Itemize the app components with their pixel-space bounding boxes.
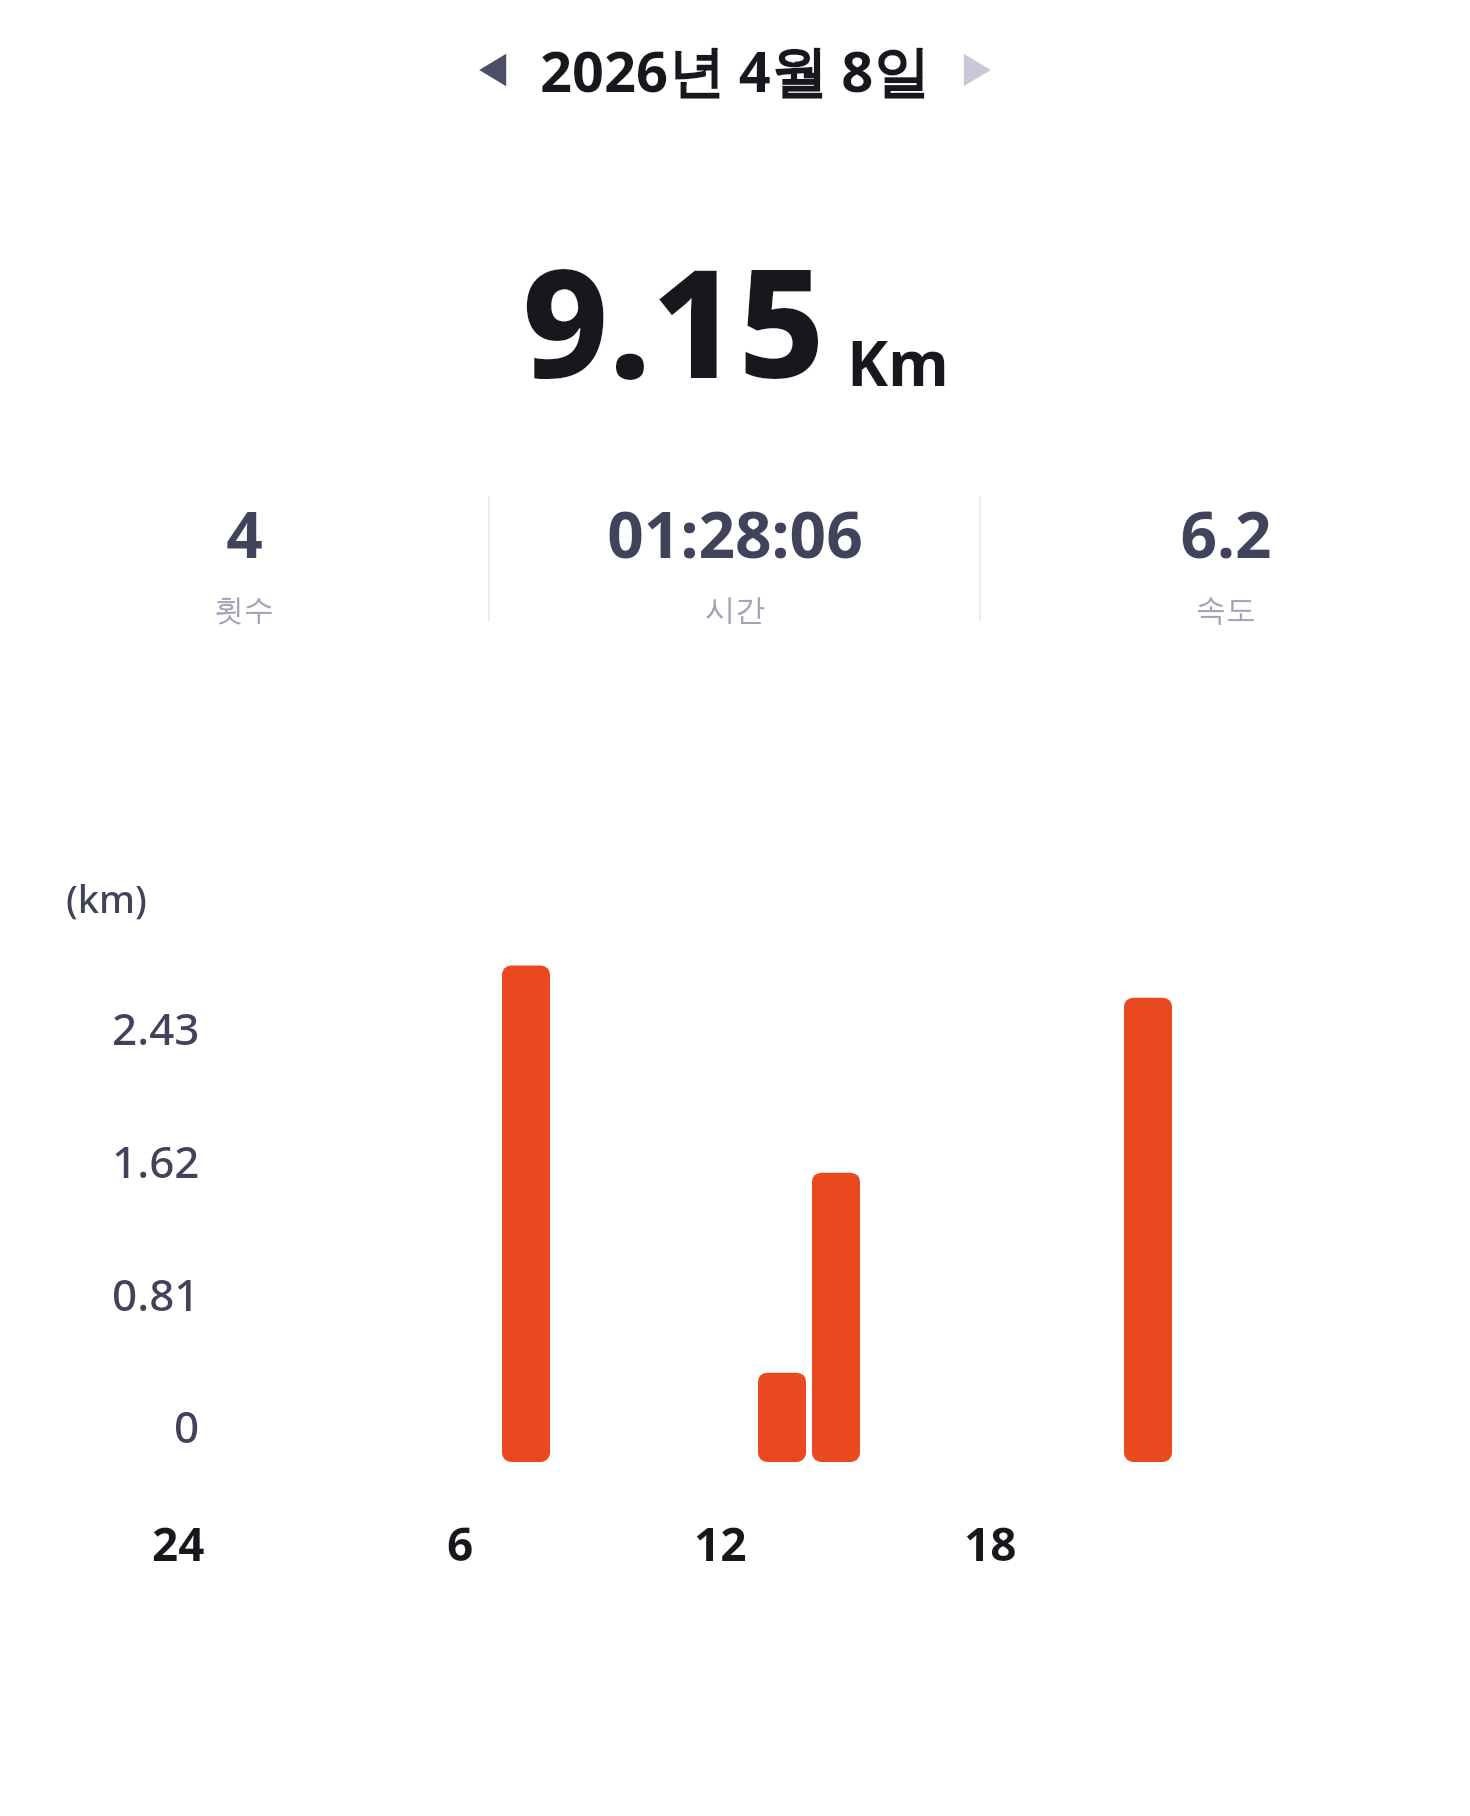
staticText: 6.2 [1180,490,1272,577]
staticText: Km [847,320,949,404]
button[interactable]: Next day [948,41,1006,99]
button[interactable]: 6.2 [981,490,1470,655]
staticText: 01:28:06 [607,490,863,577]
staticText: 18 [964,1512,1017,1575]
staticText: 6 [447,1512,474,1575]
staticText: 2026년 4월 8일 [540,32,930,108]
button[interactable]: 4 [0,490,488,655]
staticText: 속도 [1196,591,1256,629]
staticText: 횟수 [214,591,274,629]
staticText: 0.81 [112,1264,200,1324]
staticText: 2.43 [112,998,200,1058]
staticText: (km) [66,872,147,924]
staticText: 0 [174,1396,200,1456]
button[interactable]: Previous day [464,41,522,99]
staticText: 4 [226,490,263,577]
staticText: 24 [152,1512,205,1575]
button[interactable]: 01:28:06 [490,490,979,655]
staticText: 12 [694,1512,747,1575]
staticText: 9.15 [522,218,825,422]
staticText: 시간 [705,591,765,629]
staticText: 1.62 [112,1131,200,1191]
